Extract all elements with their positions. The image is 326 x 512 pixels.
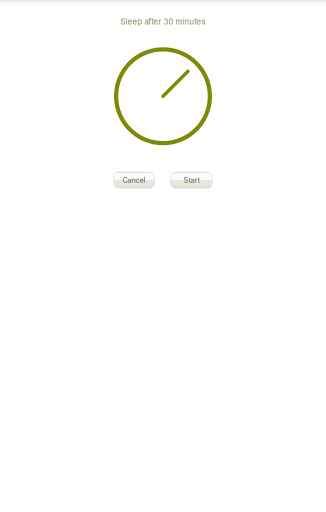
staticText: Cancel [122,176,145,184]
staticText: Start [183,176,199,184]
button[interactable]: Cancel [114,172,154,188]
button[interactable]: Start [171,172,212,188]
staticText: Sleep after 30 minutes [120,17,205,26]
